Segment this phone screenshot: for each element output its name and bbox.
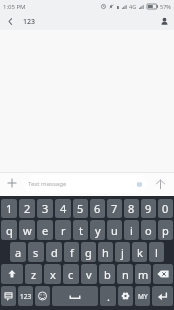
staticText: 9	[145, 201, 152, 216]
button[interactable]: 6	[90, 199, 105, 218]
button[interactable]: Emoji	[35, 286, 50, 306]
staticText: t	[79, 223, 83, 238]
button[interactable]: y	[90, 220, 105, 240]
button[interactable]: l	[149, 242, 164, 262]
button[interactable]: Backspace	[153, 264, 173, 284]
staticText: o	[145, 223, 152, 238]
staticText: n	[122, 267, 129, 282]
button[interactable]: u	[107, 220, 122, 240]
button[interactable]: Enter	[152, 286, 173, 306]
staticText: l	[155, 245, 158, 260]
staticText: 7	[111, 201, 118, 216]
staticText: 8	[128, 201, 135, 216]
button[interactable]: t	[73, 220, 88, 240]
button[interactable]: .	[100, 286, 116, 306]
staticText: 123	[20, 292, 32, 301]
staticText: 4G	[129, 3, 137, 10]
staticText: w	[23, 223, 32, 238]
button[interactable]: g	[81, 242, 96, 262]
button[interactable]: Sticker	[1, 286, 16, 306]
button[interactable]: n	[117, 264, 133, 284]
button[interactable]: j	[115, 242, 130, 262]
button[interactable]: s	[28, 242, 44, 262]
button[interactable]: p	[158, 220, 173, 240]
staticText: Text message	[28, 180, 67, 188]
staticText: MY	[138, 292, 148, 301]
staticText: 6	[94, 201, 101, 216]
button[interactable]: q	[1, 220, 17, 240]
button[interactable]: 9	[141, 199, 156, 218]
button[interactable]: Add attachment	[0, 172, 23, 196]
button[interactable]: 2	[19, 199, 35, 218]
button[interactable]: 3	[37, 199, 53, 218]
button[interactable]: Shift	[1, 264, 23, 284]
staticText: 0	[162, 201, 169, 216]
staticText: p	[162, 223, 169, 238]
button[interactable]: Space	[52, 286, 98, 306]
button[interactable]: m	[135, 264, 151, 284]
button[interactable]: b	[99, 264, 115, 284]
staticText: 123	[23, 17, 36, 27]
button[interactable]: 0	[158, 199, 173, 218]
staticText: 4	[60, 201, 67, 216]
button[interactable]: 4	[55, 199, 71, 218]
staticText: d	[51, 245, 58, 260]
button[interactable]: w	[19, 220, 35, 240]
button[interactable]: f	[64, 242, 79, 262]
button[interactable]: Text message	[23, 175, 147, 193]
staticText: c	[68, 267, 74, 282]
button[interactable]: 8	[124, 199, 139, 218]
button[interactable]: Back	[0, 13, 21, 30]
staticText: u	[111, 223, 118, 238]
staticText: y	[95, 223, 101, 238]
staticText: 2	[24, 201, 31, 216]
staticText: .	[107, 289, 110, 304]
button[interactable]: c	[63, 264, 79, 284]
staticText: b	[104, 267, 111, 282]
button[interactable]: Send	[147, 172, 174, 196]
button[interactable]: z	[25, 264, 42, 284]
staticText: r	[61, 223, 66, 238]
staticText: k	[137, 245, 143, 260]
button[interactable]: o	[141, 220, 156, 240]
staticText: s	[33, 245, 39, 260]
button[interactable]: 7	[107, 199, 122, 218]
button[interactable]: d	[46, 242, 62, 262]
staticText: a	[15, 245, 22, 260]
staticText: 5	[77, 201, 84, 216]
button[interactable]: h	[98, 242, 113, 262]
staticText: v	[86, 267, 92, 282]
staticText: i	[130, 223, 133, 238]
staticText: h	[102, 245, 109, 260]
button[interactable]: a	[10, 242, 26, 262]
staticText: x	[50, 267, 56, 282]
button[interactable]: i	[124, 220, 139, 240]
staticText: f	[70, 245, 74, 260]
button[interactable]: Settings	[118, 286, 133, 306]
button[interactable]: 1	[1, 199, 17, 218]
button[interactable]: v	[81, 264, 97, 284]
staticText: m	[138, 267, 149, 282]
button[interactable]: e	[37, 220, 53, 240]
button[interactable]: 5	[73, 199, 88, 218]
button[interactable]: k	[132, 242, 147, 262]
button[interactable]: Contact info	[154, 13, 174, 30]
button[interactable]: MY	[135, 286, 150, 306]
staticText: 1	[6, 201, 13, 216]
button[interactable]: r	[55, 220, 71, 240]
button[interactable]: x	[44, 264, 61, 284]
staticText: z	[31, 267, 37, 282]
staticText: e	[42, 223, 49, 238]
staticText: q	[6, 223, 13, 238]
staticText: 3	[42, 201, 49, 216]
staticText: 1:05 PM	[3, 3, 26, 11]
button[interactable]: 123	[18, 286, 33, 306]
staticText: g	[85, 245, 92, 260]
staticText: j	[121, 245, 124, 260]
staticText: 57%	[160, 3, 171, 10]
